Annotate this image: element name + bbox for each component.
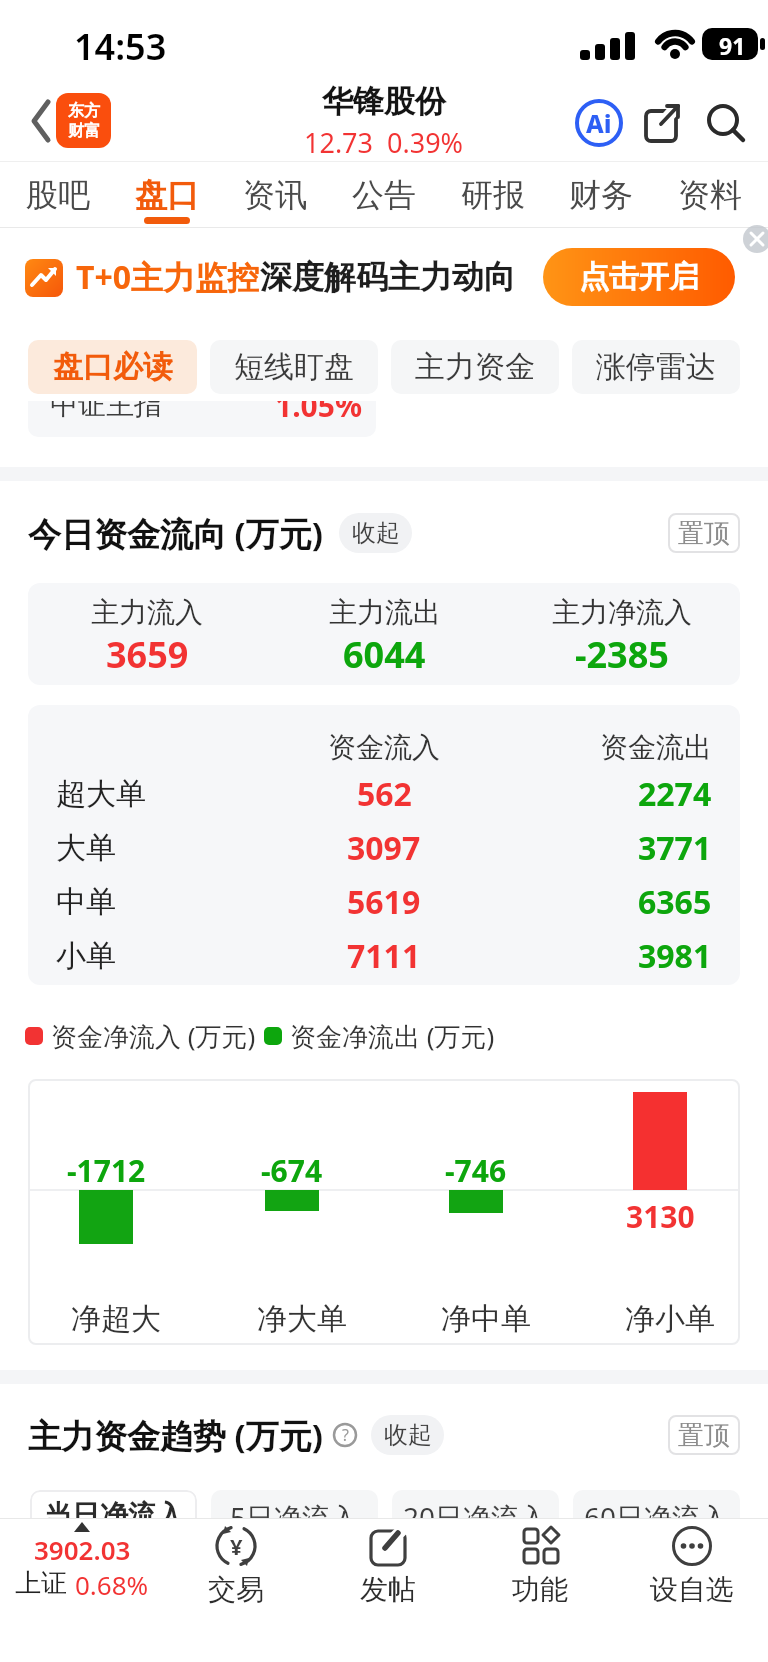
staticText: 功能 [512,1572,568,1607]
staticText: 上证 [15,1567,67,1600]
button[interactable]: 收起 [339,513,412,553]
staticText: 深度解码主力动向 [260,257,516,297]
staticText: 资金流出 [600,730,712,765]
staticText: 3902.03 [34,1532,131,1567]
staticText: 大单 [56,829,116,867]
staticText: 主力流出 [329,595,441,630]
staticText: 7111 [347,934,421,978]
staticText: 资料 [678,175,742,215]
staticText: 东方 [68,101,100,121]
staticText: 6044 [343,630,426,679]
staticText: 资讯 [243,175,307,215]
staticText: 盘口 [135,175,199,215]
staticText: 置顶 [678,1419,730,1452]
staticText: ¥ [230,1531,243,1561]
button[interactable]: 20日净流入 [392,1490,559,1550]
staticText: 资金流入 [328,730,440,765]
button[interactable]: 设自选 [642,1524,742,1607]
staticText: 股吧 [26,175,90,215]
button[interactable] [26,80,66,162]
staticText: 2274 [638,772,712,816]
button[interactable] [743,225,768,253]
staticText: -674 [261,1150,323,1191]
button[interactable]: ¥ [186,1524,286,1607]
button[interactable]: 5日净流入 [211,1490,378,1550]
staticText: 91 [719,30,746,61]
button[interactable]: T+0主力监控 [0,228,768,325]
staticText: 净小单 [625,1300,715,1338]
button[interactable]: 东方 [56,93,111,148]
button[interactable]: 置顶 [668,1415,740,1455]
button[interactable]: 公告 [352,162,416,228]
staticText: 20日净流入 [403,1498,548,1536]
button[interactable]: 涨停雷达 [572,340,740,394]
button[interactable]: 主力资金 [391,340,559,394]
button[interactable]: 财务 [569,162,633,228]
staticText: 5619 [347,880,421,924]
staticText: 超大单 [56,775,146,813]
staticText: -746 [445,1150,507,1191]
button[interactable] [640,101,684,145]
button[interactable]: 发帖 [338,1524,438,1607]
staticText: 1.05% [275,401,362,421]
button[interactable]: 点击开启 [543,248,735,306]
button[interactable]: 置顶 [668,513,740,553]
staticText: 涨停雷达 [596,348,716,386]
staticText: 3130 [626,1196,695,1237]
staticText: 12.73 0.39% [304,124,464,161]
staticText: 中证主指 [50,401,162,422]
staticText: 置顶 [678,517,730,550]
button[interactable]: 功能 [490,1524,590,1607]
staticText: 6365 [638,880,712,924]
button[interactable]: 收起 [371,1415,444,1455]
staticText: 3659 [106,630,189,679]
staticText: 盘口必读 [53,348,173,386]
staticText: 中单 [56,883,116,921]
staticText: 主力资金 [415,348,535,386]
staticText: 公告 [352,175,416,215]
staticText: 财富 [68,121,100,141]
staticText: 主力资金趋势 (万元) [28,1413,323,1458]
staticText: 华锋股份 [322,82,446,121]
staticText: 设自选 [650,1572,734,1607]
button[interactable]: 盘口 [135,162,199,228]
button[interactable]: 研报 [461,162,525,228]
staticText: 资金净流入 (万元) [51,1018,256,1054]
staticText: 3981 [638,934,712,978]
staticText: Ai [586,106,612,140]
staticText: 资金净流出 (万元) [290,1018,495,1054]
button[interactable]: 当日净流入 [30,1490,197,1550]
staticText: 财务 [569,175,633,215]
staticText: 562 [357,772,412,816]
staticText: 5日净流入 [230,1498,359,1536]
staticText: 今日资金流向 (万元) [28,511,323,556]
button[interactable]: 资料 [678,162,742,228]
button[interactable]: Ai [574,98,624,148]
staticText: 净中单 [441,1300,531,1338]
staticText: 交易 [208,1572,264,1607]
staticText: 短线盯盘 [234,348,354,386]
staticText: ? [342,1424,349,1446]
staticText: 研报 [461,175,525,215]
staticText: 3097 [347,826,421,870]
staticText: 14:53 [74,22,167,71]
staticText: T+0主力监控 [76,255,260,299]
button[interactable]: 60日净流入 [573,1490,740,1550]
button[interactable]: 盘口必读 [28,340,197,394]
button[interactable]: 资讯 [243,162,307,228]
staticText: -2385 [575,630,669,679]
staticText: 净大单 [257,1300,347,1338]
staticText: 主力流入 [91,595,203,630]
staticText: 小单 [56,937,116,975]
button[interactable] [704,101,748,145]
staticText: 当日净流入 [44,1498,184,1533]
button[interactable]: 股吧 [26,162,90,228]
button[interactable]: 3902.03 [2,1522,162,1602]
staticText: 净超大 [71,1300,161,1338]
staticText: 收起 [352,518,400,548]
staticText: 主力净流入 [552,595,692,630]
staticText: 收起 [384,1420,432,1450]
staticText: 60日净流入 [584,1498,729,1536]
button[interactable]: 短线盯盘 [210,340,378,394]
staticText: 点击开启 [579,258,699,296]
